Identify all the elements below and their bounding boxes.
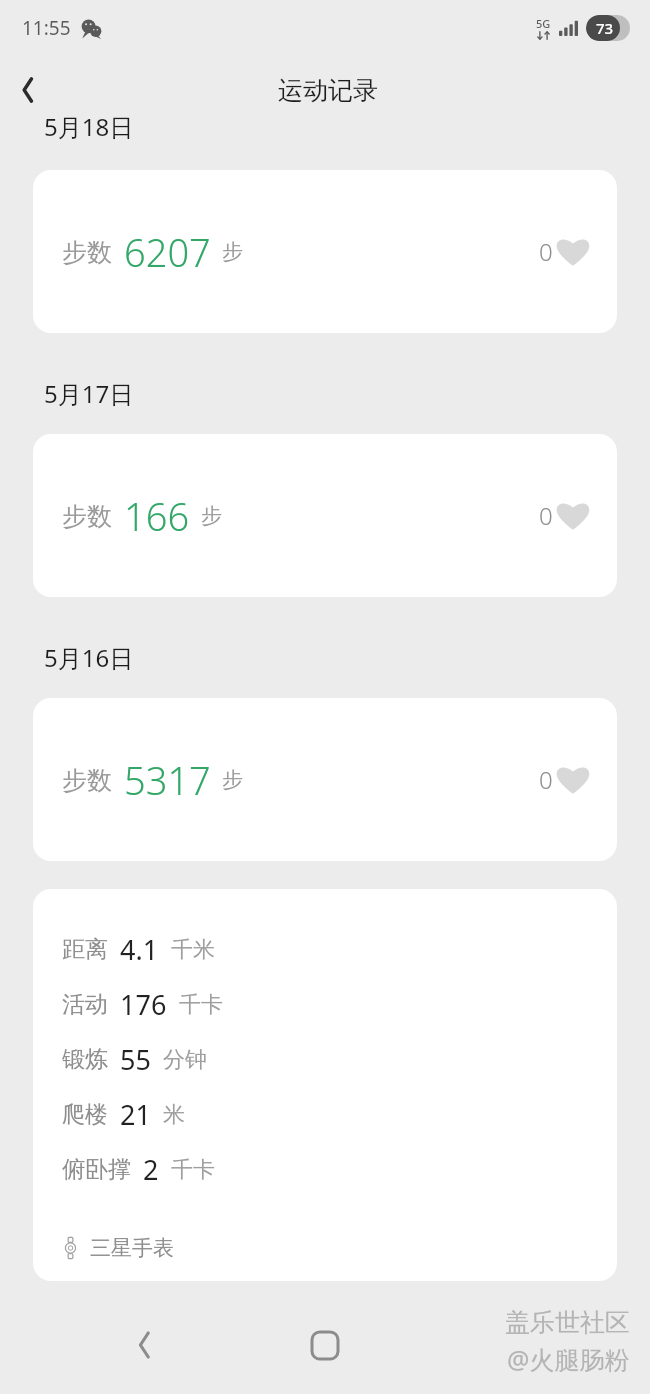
staticText: 活动 [62,990,108,1019]
staticText: 11:55 [22,15,71,41]
staticText: 步 [222,239,243,265]
staticText: 0 [539,235,553,268]
button[interactable]: 俯卧撑 [62,1142,617,1197]
staticText: 步数 [62,237,112,268]
staticText: 6207 [124,226,211,278]
staticText: 米 [163,1101,185,1129]
staticText: 步数 [62,501,112,532]
staticText: 21 [120,1096,151,1133]
button[interactable]: 距离 [33,889,617,1281]
staticText: 5月17日 [44,377,134,410]
staticText: 距离 [62,935,108,964]
button[interactable]: Back [108,1309,180,1381]
staticText: 三星手表 [90,1235,174,1261]
staticText: 5317 [124,754,211,806]
button[interactable]: 锻炼 [62,1032,617,1087]
staticText: 分钟 [163,1046,207,1074]
button[interactable]: 爬楼 [62,1087,617,1142]
button[interactable]: 活动 [62,977,617,1032]
staticText: @火腿肠粉 [507,1342,630,1376]
staticText: 4.1 [120,931,159,968]
staticText: 5月16日 [44,641,134,674]
staticText: 5G [536,16,551,31]
button[interactable]: 距离 [62,922,617,977]
button[interactable]: 步数 [33,170,617,333]
staticText: 千卡 [171,1156,215,1184]
staticText: 0 [539,499,553,532]
button[interactable]: 步数 [33,698,617,861]
staticText: 步 [201,503,222,529]
staticText: 55 [120,1041,151,1078]
staticText: 73 [596,18,614,38]
staticText: 锻炼 [62,1045,108,1074]
staticText: 千卡 [179,991,223,1019]
staticText: 步 [222,767,243,793]
button[interactable]: 返回 [0,62,56,118]
button[interactable]: Home [289,1309,361,1381]
staticText: 176 [120,986,167,1023]
staticText: 运动记录 [278,75,378,106]
staticText: 0 [539,763,553,796]
staticText: 千米 [171,936,215,964]
staticText: 爬楼 [62,1100,108,1129]
staticText: 盖乐世社区 [505,1307,630,1338]
staticText: 步数 [62,765,112,796]
staticText: 2 [143,1151,159,1188]
button[interactable]: 步数 [33,434,617,597]
staticText: 166 [124,490,190,542]
staticText: 5月18日 [44,110,134,142]
staticText: 俯卧撑 [62,1155,131,1184]
